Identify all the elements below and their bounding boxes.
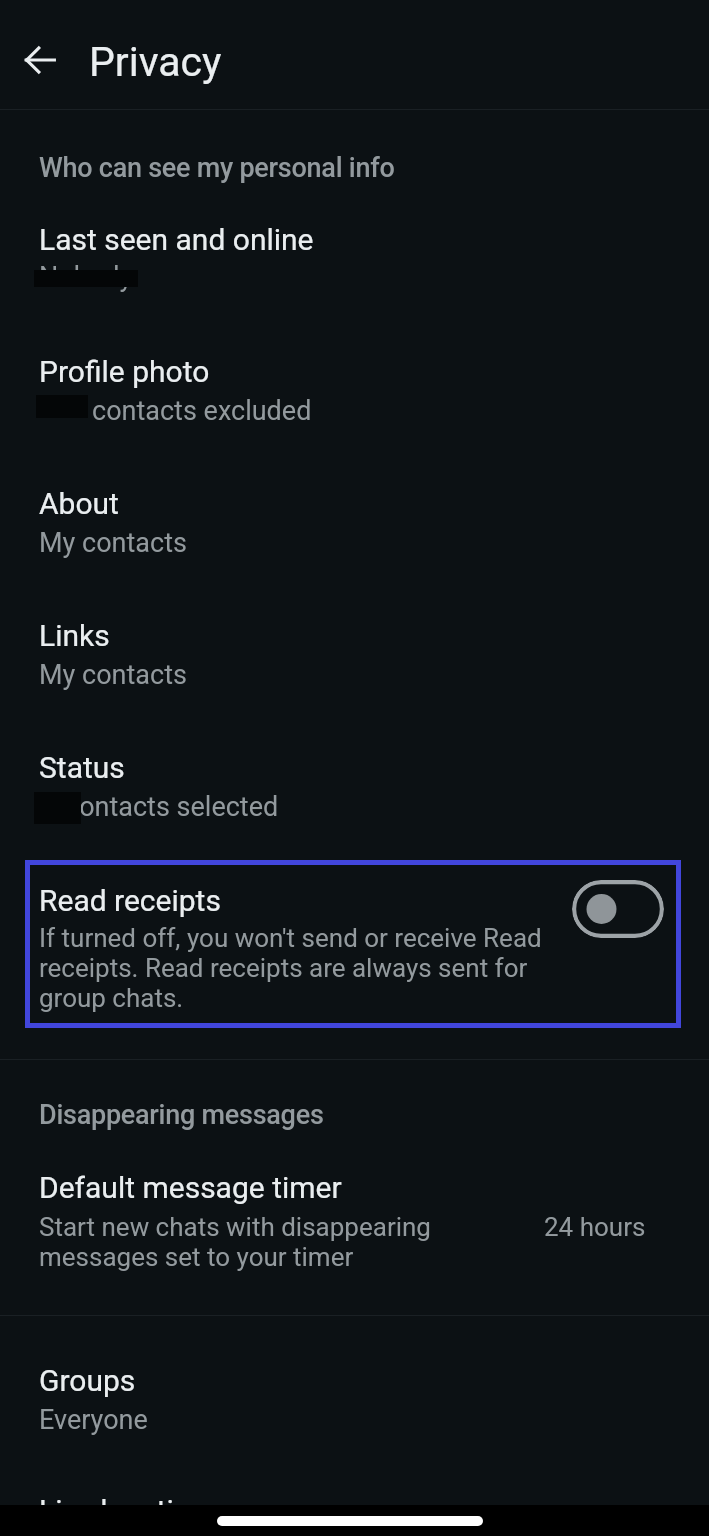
button[interactable]: Read receipts toggle, off: [572, 880, 664, 938]
staticText: Nobody: [39, 261, 133, 293]
staticText: Last seen and online: [39, 222, 314, 257]
staticText: Privacy: [89, 38, 222, 86]
button[interactable]: Links: [0, 610, 709, 714]
staticText: Status: [39, 750, 125, 785]
staticText: 24 hours: [544, 1212, 646, 1242]
staticText: Groups: [39, 1363, 136, 1398]
staticText: Who can see my personal info: [39, 152, 395, 184]
button[interactable]: Groups: [0, 1355, 709, 1459]
button[interactable]: Last seen and online: [0, 214, 709, 318]
button[interactable]: Live location: [0, 1485, 709, 1536]
button[interactable]: Back: [14, 34, 66, 86]
staticText: My contacts: [39, 527, 187, 559]
button[interactable]: Profile photo: [0, 346, 709, 450]
button[interactable]: About: [0, 478, 709, 582]
button[interactable]: Read receipts: [25, 860, 681, 1028]
staticText: contacts selected: [65, 791, 279, 823]
staticText: My contacts: [39, 659, 187, 691]
staticText: contacts excluded: [92, 395, 312, 427]
staticText: About: [39, 486, 119, 521]
staticText: Start new chats with disappearing messag…: [39, 1212, 431, 1272]
staticText: Everyone: [39, 1404, 148, 1436]
staticText: Disappearing messages: [39, 1099, 324, 1131]
staticText: Default message timer: [39, 1170, 342, 1205]
staticText: If turned off, you won't send or receive…: [39, 923, 542, 1013]
button[interactable]: Default message timer: [0, 1162, 709, 1292]
staticText: Links: [39, 618, 110, 653]
button[interactable]: Status: [0, 742, 709, 846]
staticText: Profile photo: [39, 354, 210, 389]
staticText: Read receipts: [39, 883, 221, 918]
staticText: Live location: [39, 1493, 208, 1528]
